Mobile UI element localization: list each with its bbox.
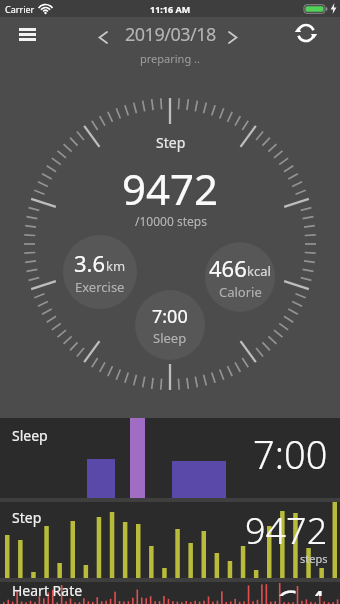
staticText: 2019/03/18 xyxy=(125,22,216,47)
staticText: preparing .. xyxy=(140,51,200,66)
staticText: Sleep xyxy=(12,426,48,445)
staticText: 7:00 xyxy=(152,304,188,329)
staticText: 9472 xyxy=(245,506,328,555)
staticText: Sleep xyxy=(153,329,187,347)
staticText: 11:16 AM xyxy=(150,3,191,15)
staticText: 64 xyxy=(273,582,328,596)
staticText: km xyxy=(106,257,126,275)
button[interactable] xyxy=(93,28,113,46)
button[interactable] xyxy=(223,28,243,46)
button[interactable]: 466 xyxy=(205,242,275,312)
staticText: kcal xyxy=(247,262,271,280)
button[interactable]: Step xyxy=(0,502,340,578)
button[interactable] xyxy=(12,21,43,47)
staticText: Step xyxy=(12,508,42,527)
staticText: Step xyxy=(156,133,186,152)
staticText: 9472 xyxy=(122,160,219,217)
staticText: 7:00 xyxy=(253,428,328,480)
button[interactable]: Sleep xyxy=(0,418,340,498)
staticText: Exercise xyxy=(75,278,125,296)
staticText: steps xyxy=(300,551,328,566)
staticText: 466 xyxy=(209,253,247,283)
staticText: Carrier xyxy=(5,3,35,15)
button[interactable]: 3.6 xyxy=(63,235,137,309)
staticText: 3.6 xyxy=(74,248,106,278)
button[interactable]: Heart Rate xyxy=(0,582,340,604)
button[interactable] xyxy=(291,18,321,48)
button[interactable]: 7:00 xyxy=(135,290,205,360)
staticText: Calorie xyxy=(219,283,262,301)
staticText: /10000 steps xyxy=(135,213,207,229)
staticText: Heart Rate xyxy=(12,582,83,600)
